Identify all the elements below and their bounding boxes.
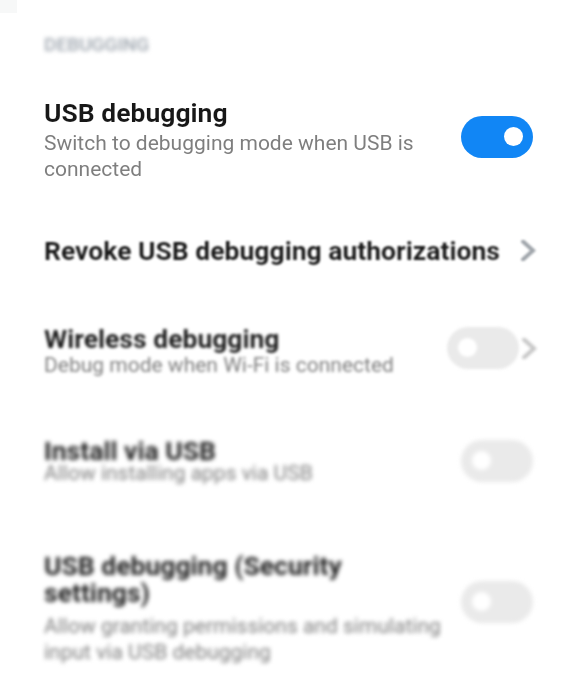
staticText: Revoke USB debugging authorizations <box>44 235 500 266</box>
button[interactable]: USB debugging <box>0 92 576 180</box>
button[interactable]: Revoke USB debugging authorizations <box>0 230 576 270</box>
staticText: Wireless debugging <box>44 323 280 354</box>
button[interactable] <box>447 327 519 369</box>
button[interactable] <box>461 581 533 623</box>
staticText: DEBUGGING <box>44 33 150 55</box>
staticText: USB debugging <box>44 97 228 128</box>
staticText: USB debugging (Security settings) <box>44 550 384 609</box>
button[interactable] <box>461 116 533 158</box>
staticText: Allow installing apps via USB <box>44 461 313 486</box>
button[interactable]: Wireless debugging <box>0 318 576 384</box>
staticText: Allow granting permissions and simulatin… <box>44 614 464 664</box>
staticText: Debug mode when Wi-Fi is connected <box>44 353 394 378</box>
staticText: Install via USB <box>44 435 216 466</box>
staticText: Switch to debugging mode when USB is con… <box>44 131 454 181</box>
button[interactable]: USB debugging (Security settings) <box>0 545 576 665</box>
button[interactable] <box>461 440 533 482</box>
button[interactable]: Install via USB <box>0 430 576 496</box>
